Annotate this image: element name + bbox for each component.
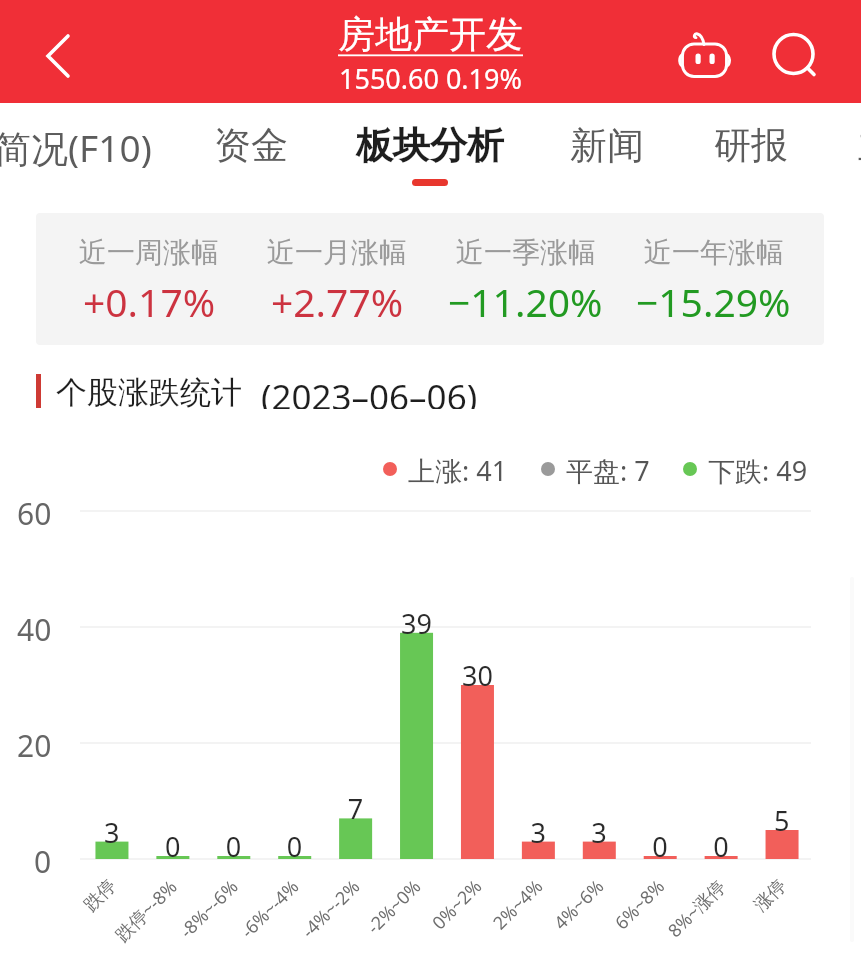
staticText: 简况(F10) bbox=[0, 122, 152, 173]
staticText: 研报 bbox=[714, 122, 788, 169]
staticText: +2.77% bbox=[271, 275, 404, 328]
staticText: 上涨: 41 bbox=[408, 452, 508, 486]
button[interactable]: Back bbox=[24, 27, 74, 77]
button[interactable]: 简况(F10) bbox=[0, 103, 183, 193]
staticText: 1550.60 0.19% bbox=[339, 60, 522, 97]
staticText: 近一月涨幅 bbox=[267, 235, 407, 270]
staticText: −15.29% bbox=[636, 275, 791, 328]
staticText: (2023–06–06) bbox=[261, 373, 478, 409]
staticText: +0.17% bbox=[83, 275, 216, 328]
button[interactable]: AI assistant bbox=[676, 27, 736, 87]
staticText: 新闻 bbox=[570, 122, 644, 169]
button[interactable]: 资金 bbox=[141, 103, 361, 193]
staticText: 下跌: 49 bbox=[708, 452, 808, 486]
staticText: 近一季涨幅 bbox=[456, 235, 596, 270]
staticText: 板块分析 bbox=[356, 122, 504, 169]
staticText: 个股涨跌统计 bbox=[56, 373, 242, 409]
staticText: 资金 bbox=[214, 122, 288, 169]
staticText: 近一周涨幅 bbox=[79, 235, 219, 270]
staticText: 平盘: 7 bbox=[566, 452, 650, 486]
button[interactable]: Search bbox=[764, 24, 824, 84]
button[interactable]: 新闻 bbox=[497, 103, 717, 193]
button[interactable]: 研报 bbox=[641, 103, 861, 193]
button[interactable]: 板块分析 bbox=[320, 103, 540, 193]
staticText: −11.20% bbox=[448, 275, 603, 328]
staticText: 主力 bbox=[858, 122, 861, 169]
button[interactable]: 近一周涨幅 bbox=[36, 213, 824, 345]
button[interactable]: 下跌: 49 bbox=[683, 452, 808, 486]
button[interactable]: 主力 bbox=[785, 103, 861, 193]
staticText: 近一年涨幅 bbox=[644, 235, 784, 270]
button[interactable]: 平盘: 7 bbox=[541, 452, 650, 486]
button[interactable]: 上涨: 41 bbox=[383, 452, 508, 486]
staticText: 房地产开发 bbox=[338, 11, 523, 58]
